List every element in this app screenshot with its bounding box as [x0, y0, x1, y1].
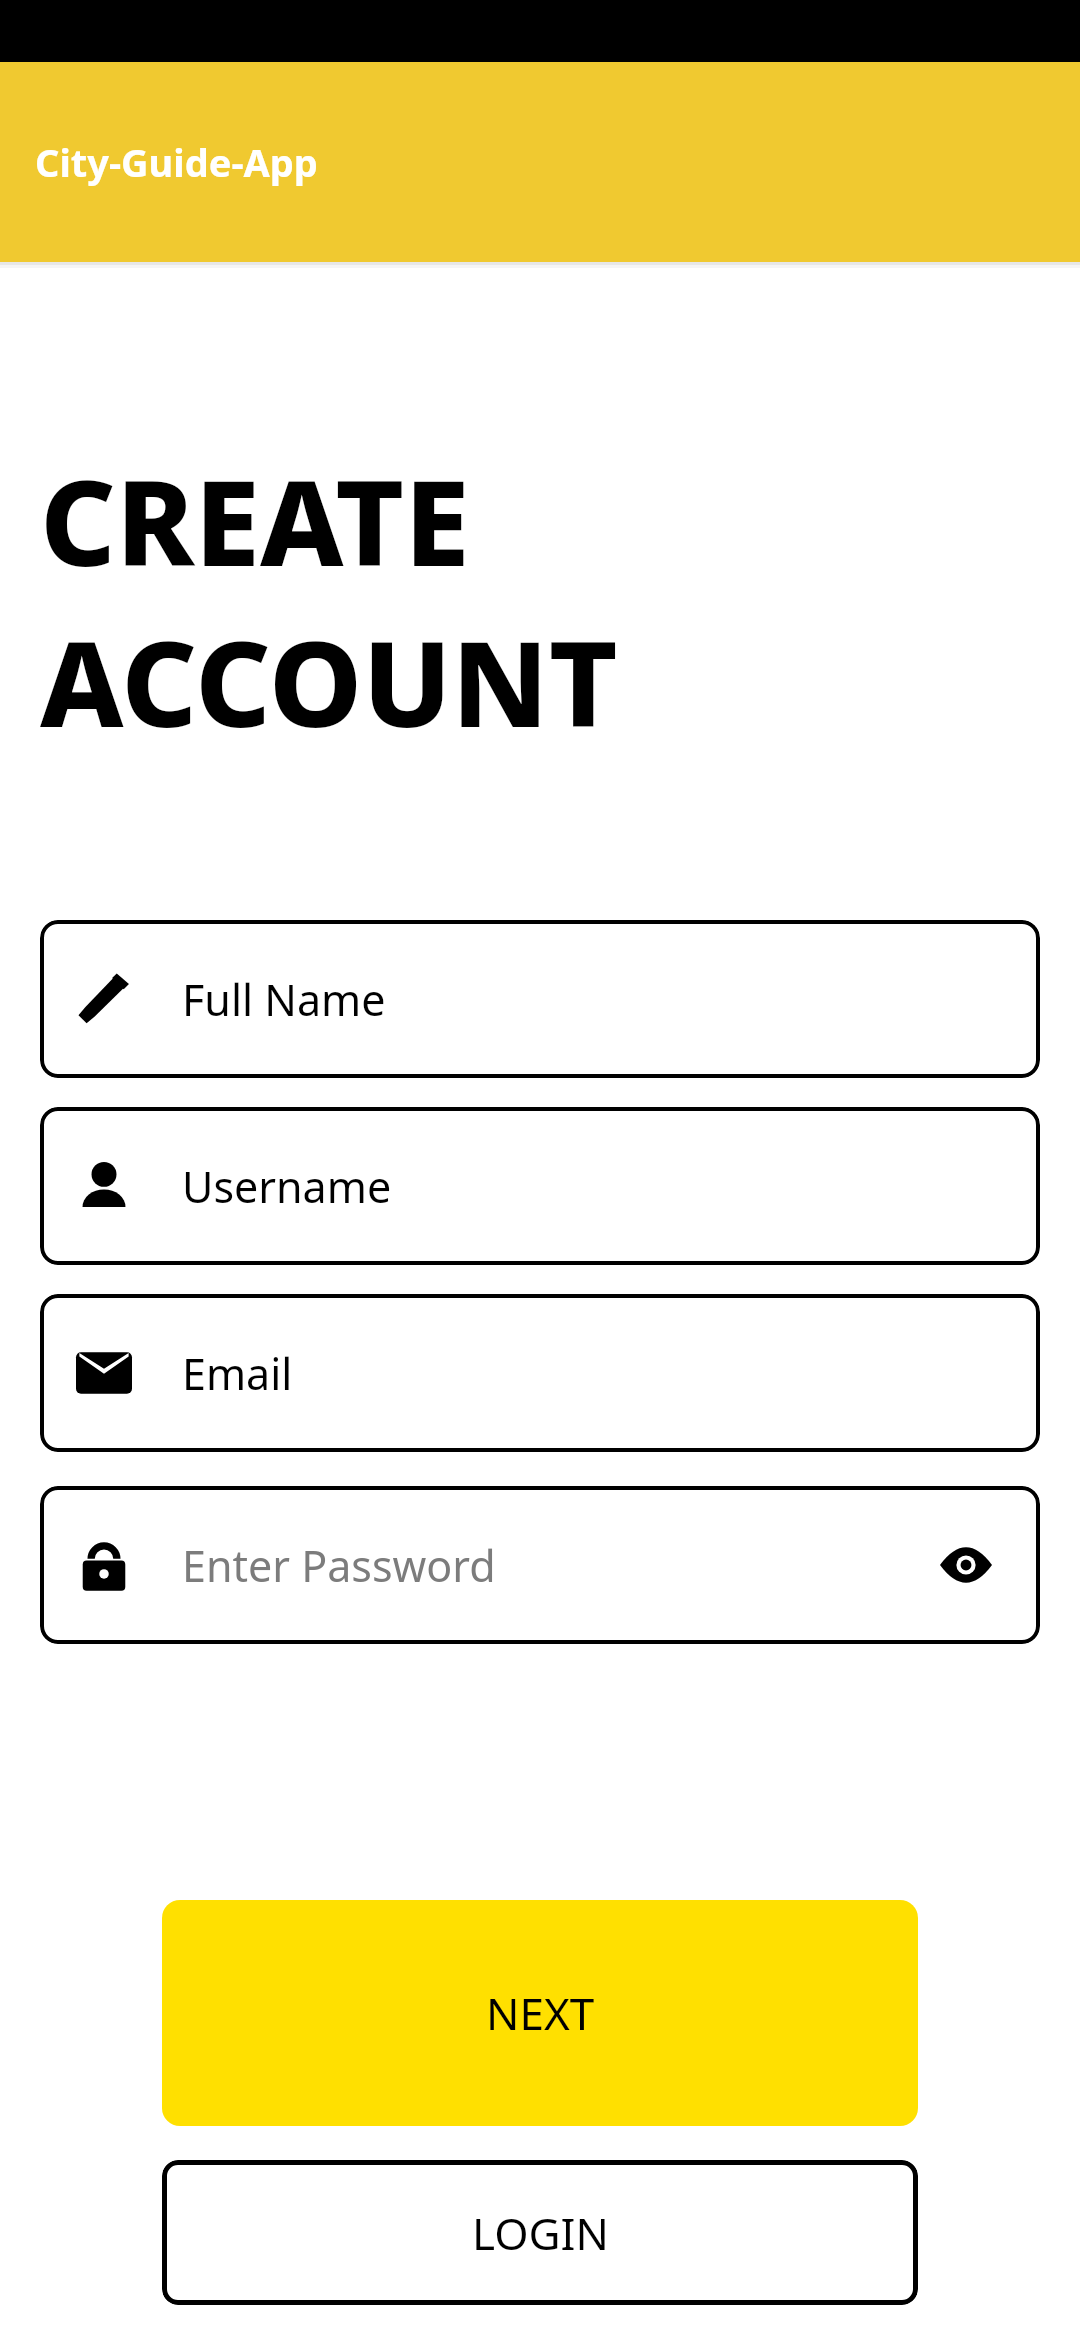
staticText: NEXT [486, 1983, 595, 2043]
button[interactable]: Email [40, 1294, 1040, 1452]
button[interactable]: NEXT [162, 1900, 918, 2126]
button[interactable]: LOGIN [162, 2160, 918, 2305]
staticText: Email [182, 1344, 293, 1403]
button[interactable]: Username [40, 1107, 1040, 1265]
staticText: CREATE [40, 440, 470, 601]
staticText: Username [182, 1157, 392, 1216]
button[interactable]: Show password [926, 1525, 1006, 1605]
staticText: Full Name [182, 970, 386, 1029]
staticText: LOGIN [472, 2203, 609, 2263]
button[interactable]: Full Name [40, 920, 1040, 1078]
button[interactable]: Enter Password [40, 1486, 1040, 1644]
staticText: ACCOUNT [40, 601, 618, 762]
staticText: Enter Password [182, 1536, 496, 1595]
staticText: City-Guide-App [35, 136, 318, 188]
